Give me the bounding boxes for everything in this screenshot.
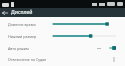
button[interactable]: Нижний размер — [0, 30, 125, 42]
staticText: Длинное время — [8, 22, 36, 27]
staticText: Дисплей — [11, 9, 33, 16]
staticText: Отключение по Судан — [8, 57, 47, 62]
button[interactable]: Toggle auto mode — [108, 45, 117, 51]
button[interactable]: Back — [0, 8, 9, 17]
button[interactable]: Длинное время — [0, 18, 125, 30]
button[interactable]: Авто режим — [0, 42, 125, 54]
staticText: Нижний размер — [8, 34, 37, 39]
button[interactable]: Отключение по Судан — [0, 54, 125, 65]
staticText: Авто режим — [8, 46, 29, 51]
